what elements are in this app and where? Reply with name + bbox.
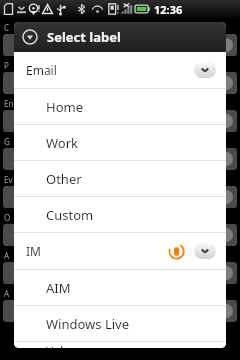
staticText: Windows Live bbox=[46, 315, 130, 333]
staticText: G bbox=[4, 136, 10, 147]
button[interactable]: IM bbox=[14, 233, 226, 269]
button[interactable]: Expand bbox=[194, 62, 216, 78]
staticText: Yahoo bbox=[46, 342, 84, 348]
staticText: Other bbox=[46, 170, 82, 188]
staticText: AIM bbox=[46, 279, 71, 297]
staticText: A bbox=[4, 288, 10, 299]
staticText: Work bbox=[46, 134, 79, 152]
button[interactable]: Home bbox=[14, 89, 226, 124]
button[interactable]: AIM bbox=[14, 270, 226, 305]
staticText: Home bbox=[46, 98, 83, 116]
staticText: IM bbox=[26, 243, 41, 259]
staticText: Select label bbox=[47, 28, 121, 46]
staticText: C bbox=[4, 22, 10, 33]
staticText: A bbox=[4, 250, 10, 261]
staticText: Ev bbox=[4, 174, 13, 185]
button[interactable]: Collapse bbox=[14, 22, 226, 52]
button[interactable]: Work bbox=[14, 125, 226, 160]
staticText: Custom bbox=[46, 206, 94, 224]
other: Collapse bbox=[22, 29, 38, 45]
button[interactable]: Other bbox=[14, 161, 226, 196]
staticText: En bbox=[4, 98, 14, 109]
button[interactable]: Custom bbox=[14, 197, 226, 232]
button[interactable]: Windows Live bbox=[14, 306, 226, 341]
button[interactable]: Yahoo bbox=[14, 342, 226, 348]
button[interactable]: Email bbox=[14, 52, 226, 88]
staticText: 12:36 bbox=[154, 2, 183, 17]
staticText: Email bbox=[26, 62, 57, 78]
staticText: P bbox=[4, 60, 9, 71]
staticText: O bbox=[4, 212, 11, 223]
button[interactable]: Expand bbox=[194, 243, 216, 259]
